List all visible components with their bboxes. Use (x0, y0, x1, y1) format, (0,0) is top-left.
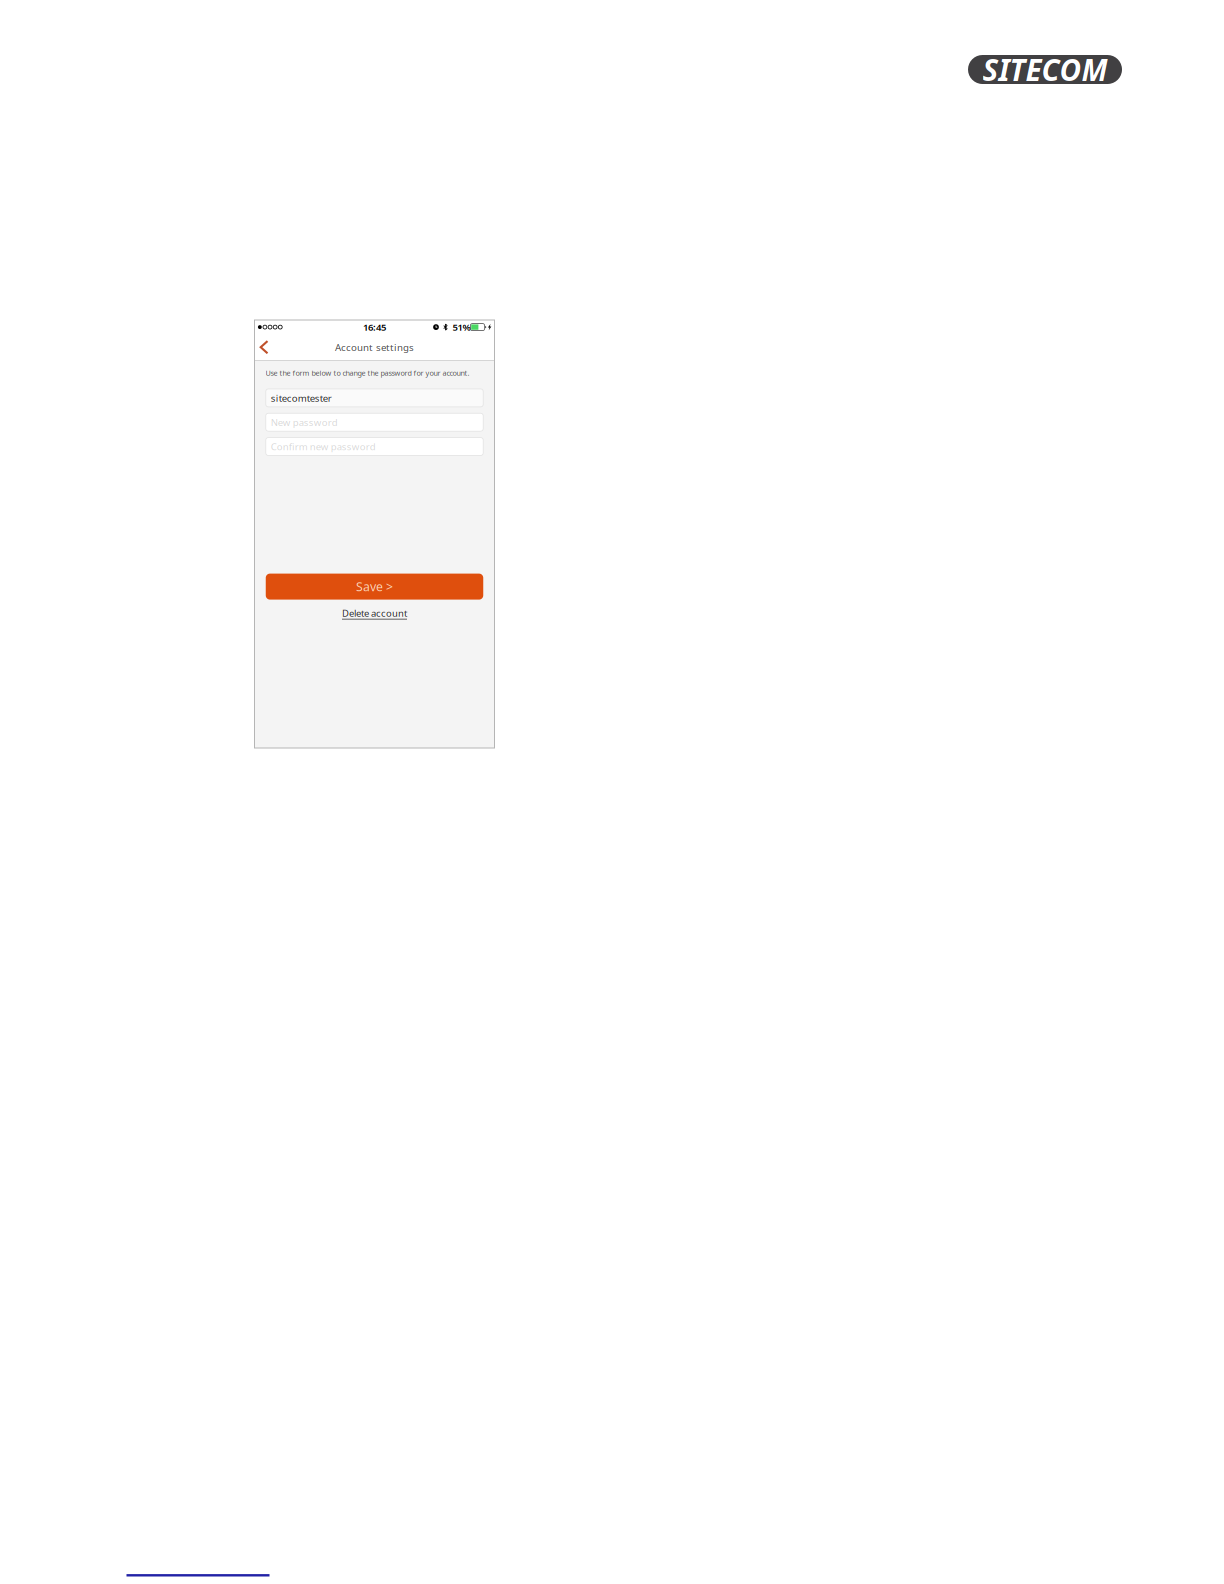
button[interactable]: Save > (266, 574, 483, 600)
staticText: New password (271, 416, 338, 429)
button[interactable]: Back (254, 334, 277, 360)
staticText: sitecomtester (271, 391, 332, 404)
button[interactable]: sitecomtester (266, 389, 483, 407)
button[interactable]: Confirm new password (266, 437, 483, 455)
staticText: Confirm new password (271, 440, 376, 453)
staticText: Save > (356, 578, 393, 595)
staticText: 16:45 (363, 321, 386, 334)
staticText: Account settings (335, 341, 414, 354)
button[interactable]: New password (266, 413, 483, 431)
staticText: Use the form below to change the passwor… (265, 368, 469, 378)
staticText: SITECOM (982, 49, 1107, 90)
staticText: 51% (452, 321, 470, 334)
button[interactable]: Delete account (340, 605, 408, 621)
staticText: Delete account (342, 607, 407, 619)
